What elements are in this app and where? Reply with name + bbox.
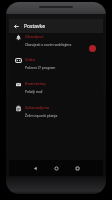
button[interactable]: Recent apps [70,160,84,176]
staticText: Obavijesti o novim sadržajima [25,42,72,46]
staticText: Želim ispuniti pitanja [25,113,58,117]
staticText: Zaboravljena [25,105,50,110]
staticText: Pokreni 2? program [25,65,56,69]
staticText: Pošalji mail [25,89,43,93]
button[interactable]: Obavijesti [9,31,103,55]
button[interactable]: Back [10,20,22,32]
staticText: Komentiraj [25,81,46,86]
staticText: Postavke [24,23,46,30]
button[interactable]: Komentiraj [9,78,103,102]
staticText: Video [25,57,36,62]
button[interactable]: Video [9,54,103,78]
button[interactable]: Home [49,160,63,176]
staticText: Obavijesti [25,34,44,39]
button[interactable]: Back [28,160,42,176]
button[interactable]: Zaboravljena [9,102,103,126]
